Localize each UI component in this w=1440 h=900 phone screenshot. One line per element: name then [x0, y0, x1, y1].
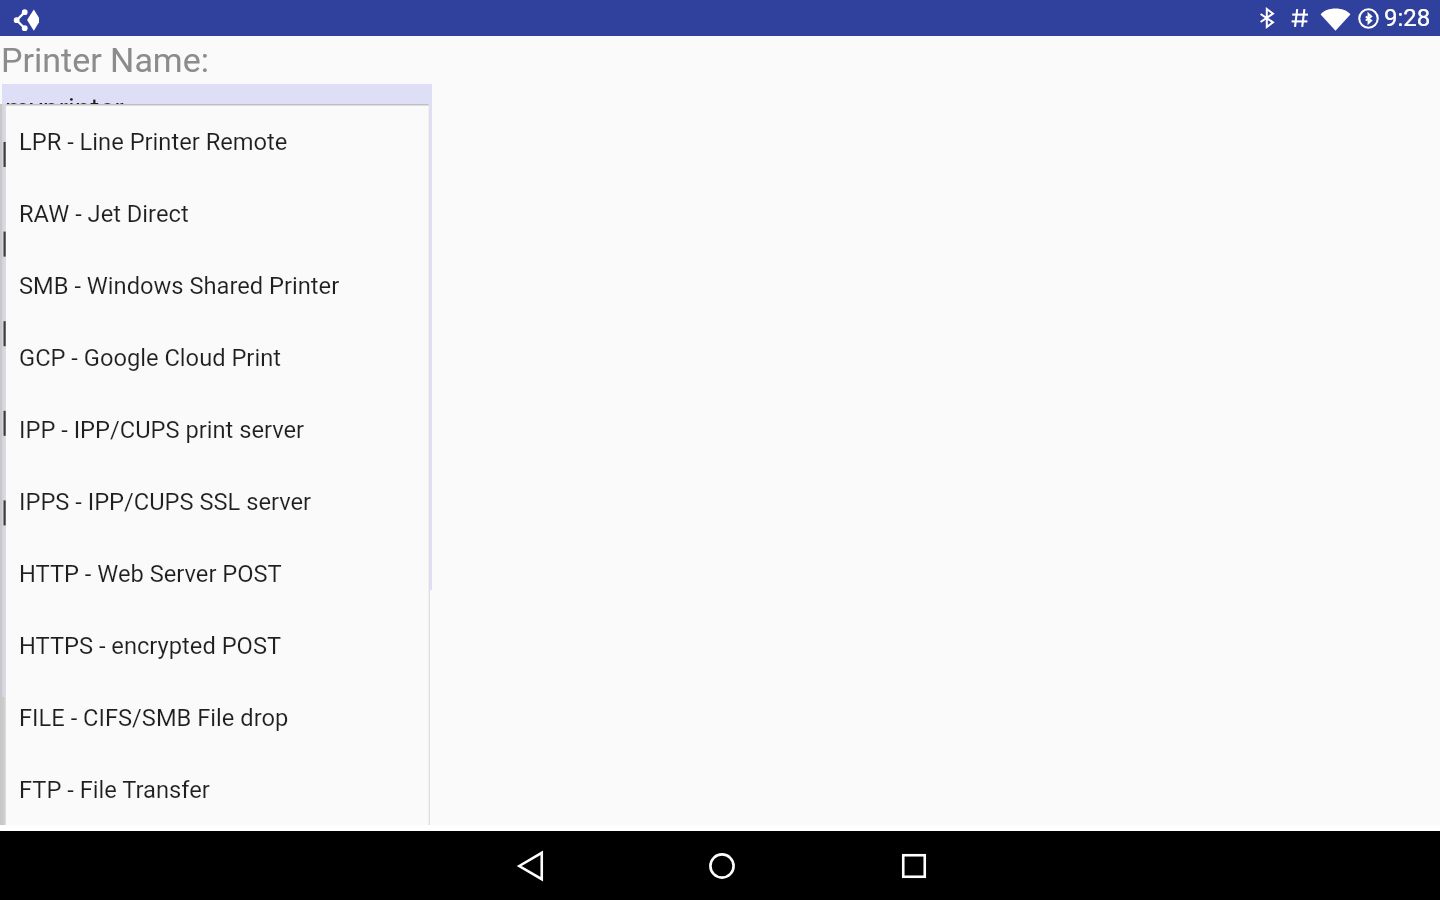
button[interactable]: SMB - Windows Shared Printer	[6, 248, 430, 320]
staticText: myprinter	[5, 92, 124, 125]
staticText: RAW - Jet Direct	[19, 200, 189, 228]
button[interactable]: Recent apps	[818, 831, 1010, 900]
staticText: GCP - Google Cloud Print	[19, 344, 281, 372]
button[interactable]: IPP - IPP/CUPS print server	[6, 392, 430, 464]
button[interactable]: HTTP - Web Server POST	[6, 536, 430, 608]
staticText: SMB - Windows Shared Printer	[19, 272, 340, 300]
button[interactable]: IPPS - IPP/CUPS SSL server	[6, 464, 430, 536]
button[interactable]: Home	[626, 831, 818, 900]
button[interactable]: HTTPS - encrypted POST	[6, 608, 430, 680]
other: Share	[13, 8, 39, 31]
button[interactable]: FTP - File Transfer	[6, 752, 430, 824]
staticText: IPP - IPP/CUPS print server	[19, 416, 305, 444]
staticText: HTTPS - encrypted POST	[19, 632, 282, 660]
button[interactable]: myprinter	[3, 84, 432, 128]
button[interactable]: FILE - CIFS/SMB File drop	[6, 680, 430, 752]
staticText: FILE - CIFS/SMB File drop	[19, 704, 289, 732]
button[interactable]: LPR - Line Printer Remote	[6, 104, 430, 176]
button[interactable]: RAW - Jet Direct	[6, 176, 430, 248]
staticText: FTP - File Transfer	[19, 776, 210, 804]
button[interactable]: Back	[434, 831, 626, 900]
staticText: IPPS - IPP/CUPS SSL server	[19, 488, 312, 516]
staticText: 9:28	[1384, 4, 1431, 32]
button[interactable]: GCP - Google Cloud Print	[6, 320, 430, 392]
staticText: Printer Name:	[1, 40, 209, 80]
staticText: HTTP - Web Server POST	[19, 560, 282, 588]
staticText: LPR - Line Printer Remote	[19, 128, 288, 156]
